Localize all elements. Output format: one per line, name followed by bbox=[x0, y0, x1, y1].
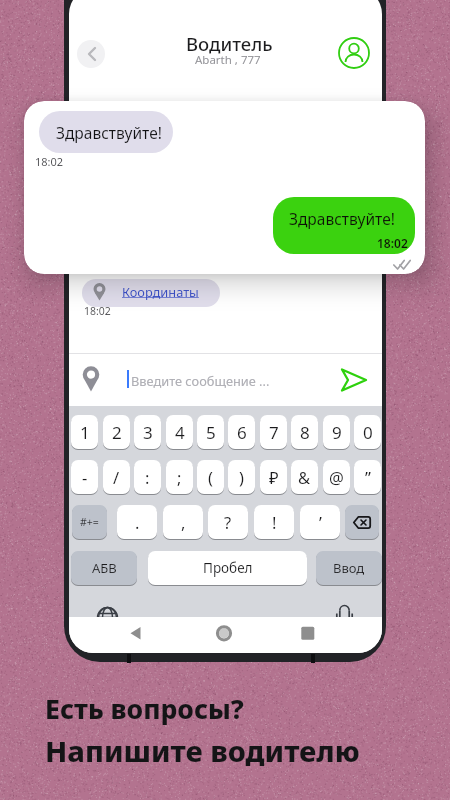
button[interactable]: #+= bbox=[72, 505, 107, 539]
button[interactable]: Пробел bbox=[148, 551, 307, 585]
staticText: 0 bbox=[363, 421, 373, 444]
button[interactable] bbox=[77, 40, 105, 68]
staticText: 3 bbox=[143, 421, 153, 444]
button[interactable]: - bbox=[71, 460, 98, 494]
button[interactable]: 1 bbox=[71, 415, 98, 449]
staticText: ₽ bbox=[269, 466, 279, 488]
staticText: 18:02 bbox=[84, 304, 111, 318]
button[interactable]: ) bbox=[228, 460, 255, 494]
staticText: . bbox=[135, 511, 140, 533]
staticText: 7 bbox=[269, 421, 279, 444]
button[interactable]: : bbox=[134, 460, 161, 494]
staticText: ( bbox=[208, 466, 213, 488]
staticText: ; bbox=[177, 466, 182, 488]
button[interactable]: Здравствуйте! bbox=[273, 197, 415, 254]
button[interactable]: . bbox=[117, 505, 157, 539]
staticText: 1 bbox=[80, 421, 90, 444]
button[interactable]: Координаты bbox=[82, 279, 220, 307]
staticText: ’ bbox=[319, 511, 322, 533]
button[interactable] bbox=[338, 37, 370, 69]
button[interactable] bbox=[345, 505, 379, 539]
staticText: ” bbox=[365, 466, 371, 488]
button[interactable]: 8 bbox=[291, 415, 318, 449]
staticText: 18:02 bbox=[35, 154, 64, 169]
staticText: ! bbox=[272, 511, 277, 533]
button[interactable]: 7 bbox=[260, 415, 287, 449]
button[interactable]: 2 bbox=[103, 415, 130, 449]
staticText: 18:02 bbox=[377, 235, 408, 251]
staticText: АБВ bbox=[92, 559, 117, 577]
staticText: #+= bbox=[80, 515, 99, 529]
button[interactable]: @ bbox=[323, 460, 350, 494]
staticText: , bbox=[181, 511, 186, 533]
staticText: 5 bbox=[206, 421, 216, 444]
staticText: @ bbox=[329, 466, 344, 488]
button[interactable]: Ввод bbox=[316, 551, 382, 585]
button[interactable] bbox=[337, 364, 371, 396]
button[interactable]: 5 bbox=[197, 415, 224, 449]
button[interactable]: ! bbox=[254, 505, 294, 539]
button[interactable]: & bbox=[291, 460, 318, 494]
staticText: & bbox=[298, 466, 311, 488]
staticText: : bbox=[145, 466, 150, 488]
button[interactable]: 0 bbox=[354, 415, 381, 449]
button[interactable]: АБВ bbox=[71, 551, 137, 585]
button[interactable]: ₽ bbox=[260, 460, 287, 494]
button[interactable] bbox=[127, 625, 145, 643]
staticText: Пробел bbox=[203, 559, 253, 577]
staticText: Есть вопросы? bbox=[45, 691, 244, 727]
staticText: 9 bbox=[332, 421, 342, 444]
staticText: 4 bbox=[175, 421, 185, 444]
staticText: ) bbox=[239, 466, 244, 488]
button[interactable]: ’ bbox=[300, 505, 340, 539]
staticText: Ввод bbox=[333, 559, 365, 577]
button[interactable] bbox=[215, 625, 233, 643]
staticText: Введите сообщение ... bbox=[131, 372, 270, 389]
button[interactable] bbox=[298, 625, 316, 643]
button[interactable]: ” bbox=[354, 460, 381, 494]
staticText: 2 bbox=[112, 421, 122, 444]
button[interactable]: ; bbox=[166, 460, 193, 494]
staticText: Координаты bbox=[122, 283, 199, 300]
staticText: Водитель bbox=[186, 31, 273, 56]
button[interactable]: , bbox=[163, 505, 203, 539]
staticText: 8 bbox=[300, 421, 310, 444]
button[interactable]: 3 bbox=[134, 415, 161, 449]
button[interactable]: 9 bbox=[323, 415, 350, 449]
button[interactable]: ? bbox=[208, 505, 248, 539]
staticText: Abarth , 777 bbox=[195, 52, 261, 68]
staticText: Напишите водителю bbox=[45, 731, 360, 770]
staticText: Здравствуйте! bbox=[289, 208, 395, 229]
button[interactable]: / bbox=[103, 460, 130, 494]
staticText: Здравствуйте! bbox=[56, 122, 162, 143]
staticText: ? bbox=[224, 511, 232, 533]
button[interactable]: ( bbox=[197, 460, 224, 494]
button[interactable]: 4 bbox=[166, 415, 193, 449]
staticText: - bbox=[82, 466, 88, 488]
staticText: / bbox=[113, 466, 120, 488]
button[interactable]: 6 bbox=[228, 415, 255, 449]
button[interactable]: Здравствуйте! bbox=[39, 111, 173, 153]
staticText: 6 bbox=[237, 421, 247, 444]
